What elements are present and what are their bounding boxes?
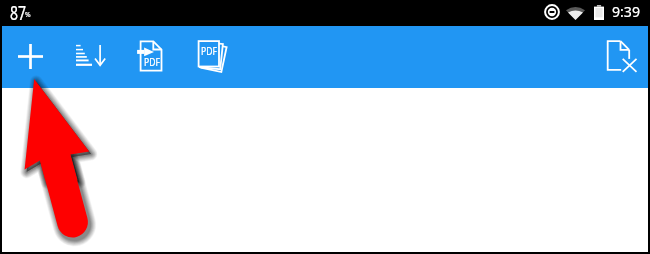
button[interactable]: Create PDF (124, 30, 178, 84)
button[interactable]: Merge PDF files (186, 30, 240, 84)
staticText: 87 (10, 0, 26, 25)
staticText: PDF (201, 43, 217, 58)
staticText: PDF (144, 54, 160, 69)
other: Do not disturb (544, 4, 560, 20)
button[interactable]: Add (4, 30, 58, 84)
staticText: % (25, 9, 31, 19)
staticText: 9:39 (612, 1, 640, 21)
button[interactable]: Sort (62, 30, 116, 84)
other: Battery (594, 5, 604, 20)
other: Wi-Fi (566, 6, 585, 20)
button[interactable]: Delete file (595, 30, 649, 84)
